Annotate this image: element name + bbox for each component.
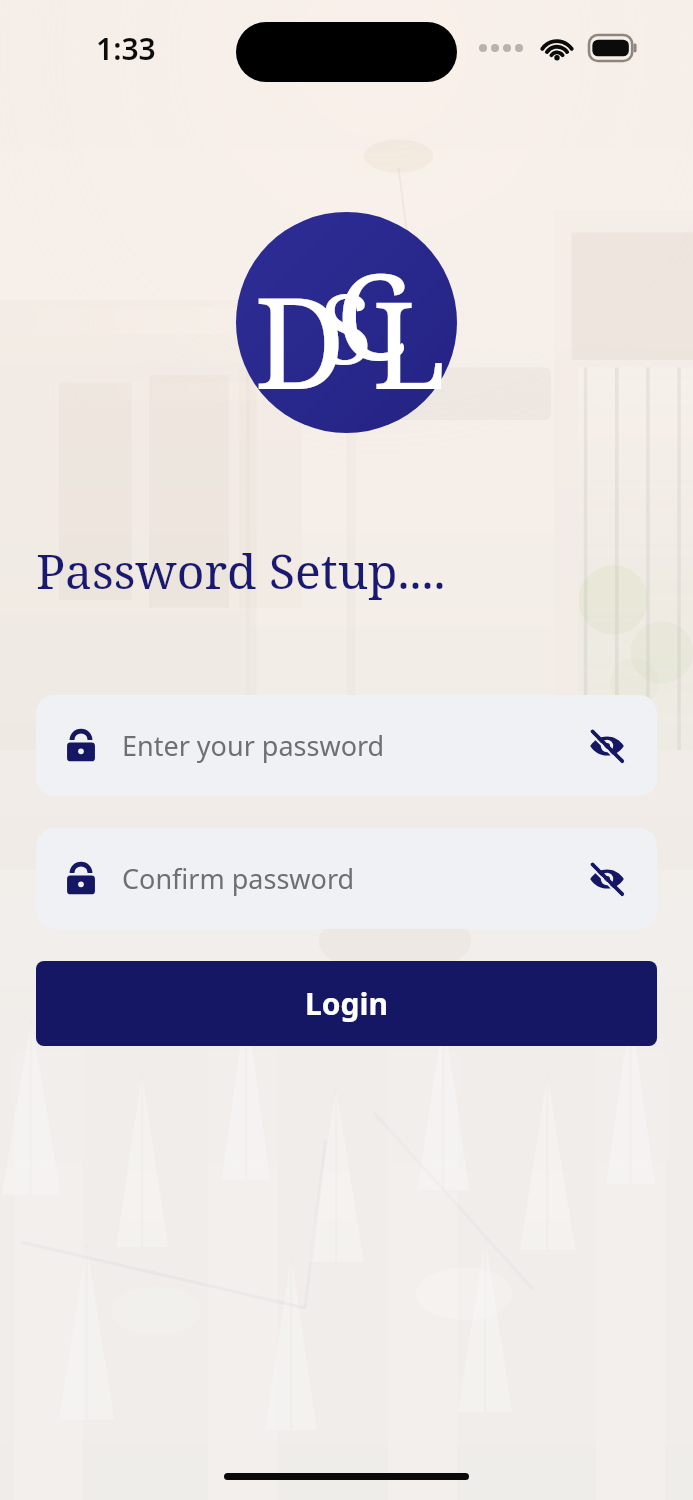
staticText: S <box>320 261 373 392</box>
staticText: D <box>254 254 346 426</box>
staticText: Enter your password <box>122 727 585 764</box>
button[interactable]: Enter your password <box>36 695 657 796</box>
button[interactable]: Confirm password <box>36 828 657 929</box>
staticText: 1:33 <box>96 28 156 69</box>
staticText: C <box>336 234 409 395</box>
staticText: Login <box>305 983 388 1024</box>
button[interactable]: Show password <box>585 724 629 768</box>
staticText: L <box>372 261 447 424</box>
button[interactable]: Login <box>36 961 657 1046</box>
staticText: Password Setup.... <box>36 538 446 603</box>
button[interactable]: Show password <box>585 857 629 901</box>
staticText: Confirm password <box>122 860 585 897</box>
